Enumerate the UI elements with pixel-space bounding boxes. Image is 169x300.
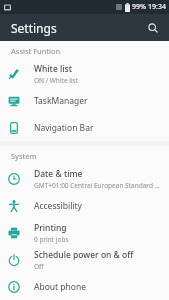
staticText: TaskManager — [34, 95, 88, 107]
button[interactable]: TaskManager — [0, 87, 169, 114]
staticText: 99% — [132, 2, 146, 12]
button[interactable]: Date & time — [0, 165, 169, 192]
staticText: Settings — [11, 20, 57, 36]
staticText: Assist Funtion — [11, 46, 61, 56]
staticText: System — [11, 151, 37, 161]
staticText: Navigation Bar — [34, 122, 94, 134]
button[interactable]: About phone — [0, 273, 169, 300]
staticText: Off — [34, 262, 44, 271]
staticText: GMT+01:00 Central European Standard Time — [34, 181, 161, 190]
staticText: Printing — [34, 222, 67, 234]
button[interactable]: White list — [0, 60, 169, 87]
button[interactable]: Accessibility — [0, 192, 169, 219]
button[interactable]: Schedule power on & off — [0, 246, 169, 273]
staticText: Schedule power on & off — [34, 249, 134, 261]
staticText: Date & time — [34, 168, 83, 180]
staticText: 0 print jobs — [34, 235, 69, 244]
button[interactable]: Navigation Bar — [0, 114, 169, 141]
staticText: 19:34 — [148, 2, 166, 12]
staticText: White list — [34, 63, 72, 75]
button[interactable]: Search — [143, 18, 163, 38]
button[interactable]: Printing — [0, 219, 169, 246]
staticText: ON / White list — [34, 76, 79, 85]
staticText: About phone — [34, 281, 87, 293]
staticText: Accessibility — [34, 200, 82, 212]
